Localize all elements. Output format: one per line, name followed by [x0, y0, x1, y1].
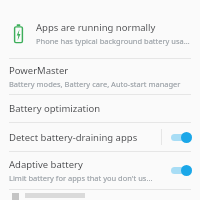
staticText: Detect battery-draining apps	[9, 131, 138, 144]
button[interactable]	[0, 190, 200, 200]
button[interactable]: PowerMaster	[0, 59, 200, 94]
button[interactable]: Adaptive battery	[0, 158, 162, 183]
staticText: Limit battery for apps that you don't us…	[9, 173, 156, 183]
button[interactable]: Apps are running normally	[0, 8, 200, 58]
staticText: PowerMaster	[9, 64, 69, 77]
button[interactable]: Adaptive battery toggle	[162, 152, 200, 189]
staticText: Apps are running normally	[36, 21, 156, 34]
staticText: Phone has typical background battery usa…	[36, 36, 190, 46]
button[interactable]: Battery optimization	[0, 95, 200, 122]
button[interactable]: Detect battery-draining apps	[0, 123, 161, 151]
button[interactable]: Detect battery-draining apps toggle	[162, 123, 200, 151]
staticText: Battery modes, Battery care, Auto-start …	[9, 79, 181, 89]
staticText: Battery optimization	[9, 102, 101, 115]
staticText: Adaptive battery	[9, 158, 83, 171]
